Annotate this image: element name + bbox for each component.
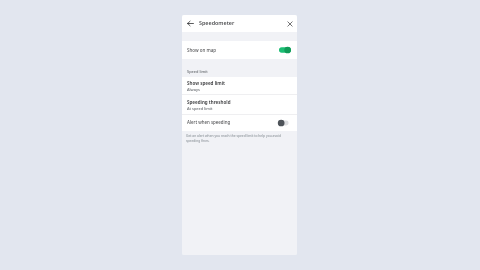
staticText: Alert when speeding bbox=[187, 119, 231, 125]
button[interactable]: Alert when speeding bbox=[182, 115, 297, 131]
staticText: Get an alert when you reach the speed li… bbox=[186, 133, 290, 143]
button[interactable]: Show speed limit bbox=[182, 77, 297, 94]
button[interactable]: Speeding threshold bbox=[182, 95, 297, 114]
staticText: Speedometer bbox=[199, 19, 235, 26]
button[interactable]: Show on map bbox=[182, 41, 297, 59]
staticText: Speed limit bbox=[187, 69, 208, 74]
button[interactable]: Switch off bbox=[279, 119, 291, 127]
staticText: Always bbox=[187, 87, 200, 92]
staticText: Show on map bbox=[187, 47, 217, 53]
button[interactable]: Back bbox=[185, 18, 196, 29]
staticText: At speed limit bbox=[187, 106, 213, 111]
staticText: Show speed limit bbox=[187, 80, 226, 86]
button[interactable]: Close bbox=[284, 18, 295, 29]
button[interactable]: Switch on bbox=[279, 46, 291, 54]
staticText: Speeding threshold bbox=[187, 99, 231, 105]
